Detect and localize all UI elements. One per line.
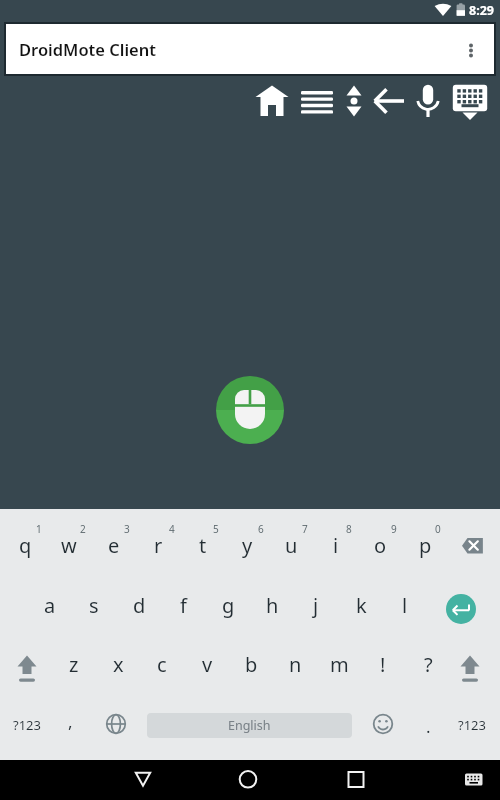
staticText: c [157,651,167,678]
button[interactable]: x [96,638,140,690]
button[interactable]: a [28,579,72,631]
staticText: s [89,592,99,619]
button[interactable] [334,760,378,800]
button[interactable] [94,702,138,746]
staticText: 5 [213,522,219,536]
staticText: f [180,592,187,619]
staticText: d [133,592,146,619]
staticText: 3 [124,522,130,536]
button[interactable]: , [40,701,100,741]
staticText: 4 [169,522,175,536]
button[interactable]: c [140,638,184,690]
staticText: h [266,592,279,619]
button[interactable]: w [47,519,91,571]
staticText: r [154,532,163,559]
button[interactable]: r [136,519,180,571]
button[interactable]: z [52,638,96,690]
button[interactable] [448,79,492,123]
staticText: v [202,651,213,678]
button[interactable]: y [225,519,269,571]
staticText: o [374,532,387,559]
button[interactable]: o [358,519,402,571]
staticText: j [313,592,319,619]
button[interactable] [5,643,49,687]
staticText: , [68,710,73,733]
staticText: . [426,715,431,738]
staticText: ! [380,651,386,678]
staticText: 8 [346,522,352,536]
button[interactable]: b [229,638,273,690]
button[interactable]: k [339,579,383,631]
button[interactable]: s [72,579,116,631]
button[interactable]: j [294,579,338,631]
staticText: b [245,651,258,678]
staticText: z [69,651,79,678]
staticText: g [222,592,235,619]
button[interactable]: u [269,519,313,571]
button[interactable]: m [317,638,361,690]
staticText: ? [424,651,433,678]
staticText: 6 [258,522,264,536]
button[interactable] [367,79,411,123]
staticText: i [333,532,339,559]
staticText: x [113,651,124,678]
staticText: 2 [80,522,86,536]
staticText: u [285,532,298,559]
button[interactable]: ! [361,638,405,690]
staticText: English [228,717,271,734]
staticText: n [289,651,302,678]
button[interactable]: English [147,713,352,738]
button[interactable]: f [161,579,205,631]
button[interactable] [451,527,495,563]
button[interactable]: p [403,519,447,571]
button[interactable] [448,643,492,687]
button[interactable]: d [117,579,161,631]
staticText: m [330,651,349,678]
staticText: t [199,532,207,559]
button[interactable] [121,760,165,800]
button[interactable] [332,79,376,123]
staticText: 0 [435,522,441,536]
button[interactable]: ?123 [2,705,52,745]
staticText: w [61,532,77,559]
staticText: 9 [391,522,397,536]
button[interactable] [226,760,270,800]
button[interactable]: i [314,519,358,571]
button[interactable]: ?123 [447,705,497,745]
button[interactable] [452,22,496,76]
button[interactable]: e [92,519,136,571]
button[interactable] [406,78,450,122]
staticText: q [19,532,32,559]
button[interactable]: t [181,519,225,571]
button[interactable]: l [383,579,427,631]
staticText: ?123 [13,716,41,734]
staticText: a [44,592,56,619]
button[interactable]: v [185,638,229,690]
button[interactable] [216,376,284,444]
button[interactable]: . [398,706,458,746]
staticText: e [108,532,120,559]
staticText: 1 [36,522,42,536]
button[interactable] [446,594,476,624]
button[interactable]: n [273,638,317,690]
button[interactable]: g [206,579,250,631]
button[interactable] [452,760,496,800]
staticText: 8:29 [469,2,494,19]
staticText: l [402,592,408,619]
button[interactable]: ? [406,638,450,690]
staticText: p [419,532,432,559]
button[interactable]: q [3,519,47,571]
button[interactable] [361,702,405,746]
staticText: y [242,532,253,559]
staticText: 7 [302,522,308,536]
staticText: DroidMote Client [19,38,156,60]
button[interactable] [250,79,294,123]
button[interactable] [295,79,339,123]
staticText: k [356,592,367,619]
button[interactable]: h [250,579,294,631]
staticText: ?123 [458,716,486,734]
